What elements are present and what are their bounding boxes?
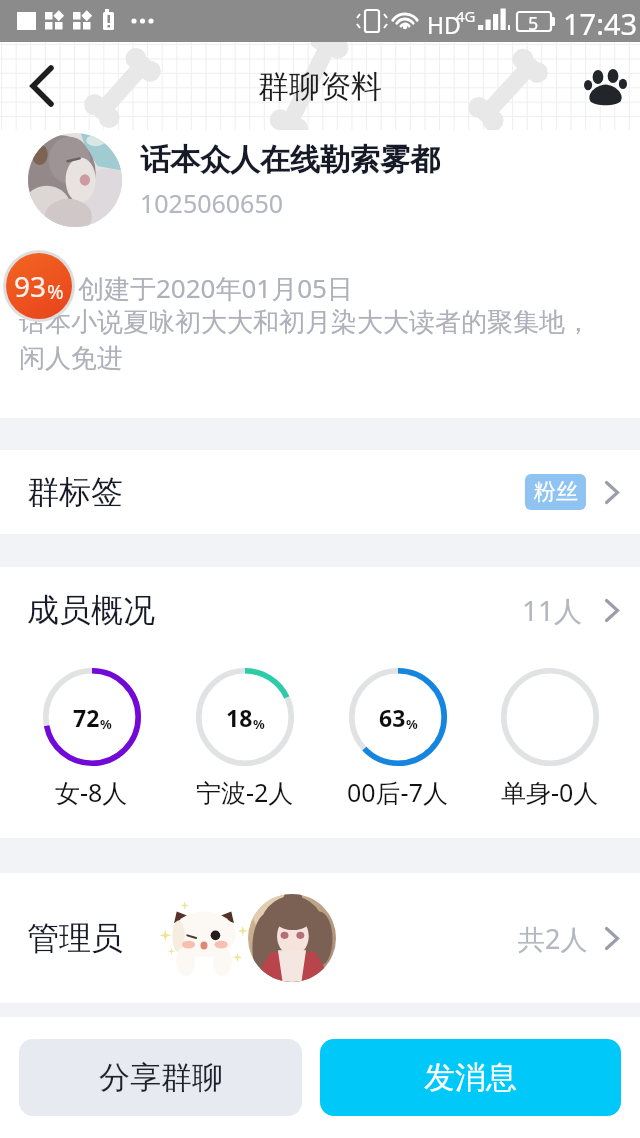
staticText: 粉丝 bbox=[534, 478, 578, 506]
button[interactable]: 话本众人在线勒索雾都 bbox=[0, 132, 640, 228]
button[interactable]: Paw bbox=[579, 60, 631, 112]
staticText: 18 bbox=[226, 702, 253, 733]
staticText: 话本众人在线勒索雾都 bbox=[140, 141, 440, 179]
staticText: 63 bbox=[379, 702, 406, 733]
staticText: 72 bbox=[73, 702, 100, 733]
staticText: % bbox=[47, 278, 64, 305]
staticText: 管理员 bbox=[27, 918, 123, 958]
staticText: 1025060650 bbox=[140, 186, 284, 220]
button[interactable]: 群标签 bbox=[0, 450, 640, 534]
staticText: % bbox=[406, 715, 418, 733]
staticText: 女-8人 bbox=[55, 775, 128, 809]
staticText: 00后-7人 bbox=[347, 775, 448, 809]
staticText: 群聊资料 bbox=[258, 67, 382, 106]
staticText: 话本小说夏咏初大大和初月染大大读者的聚集地， bbox=[19, 306, 591, 339]
staticText: 11人 bbox=[522, 591, 583, 629]
staticText: 共2人 bbox=[518, 920, 588, 957]
button[interactable]: 发消息 bbox=[320, 1039, 621, 1116]
staticText: % bbox=[253, 715, 265, 733]
staticText: 17:43 bbox=[563, 4, 638, 43]
staticText: 单身-0人 bbox=[501, 775, 599, 809]
staticText: 宁波-2人 bbox=[196, 775, 294, 809]
button[interactable]: 成员概况 bbox=[0, 571, 640, 649]
staticText: 93 bbox=[14, 267, 47, 305]
staticText: % bbox=[100, 715, 112, 733]
staticText: 群标签 bbox=[27, 472, 123, 512]
staticText: 发消息 bbox=[424, 1058, 517, 1097]
staticText: 5 bbox=[528, 11, 539, 36]
staticText: 分享群聊 bbox=[99, 1058, 223, 1097]
button[interactable]: 分享群聊 bbox=[19, 1039, 302, 1116]
staticText: 闲人免进 bbox=[19, 342, 123, 375]
button[interactable]: 管理员 bbox=[0, 873, 640, 1003]
staticText: HD bbox=[427, 9, 461, 40]
button[interactable]: Back bbox=[0, 48, 76, 124]
staticText: 4G bbox=[456, 6, 476, 26]
staticText: 成员概况 bbox=[27, 590, 155, 630]
staticText: 创建于2020年01月05日 bbox=[78, 270, 353, 306]
